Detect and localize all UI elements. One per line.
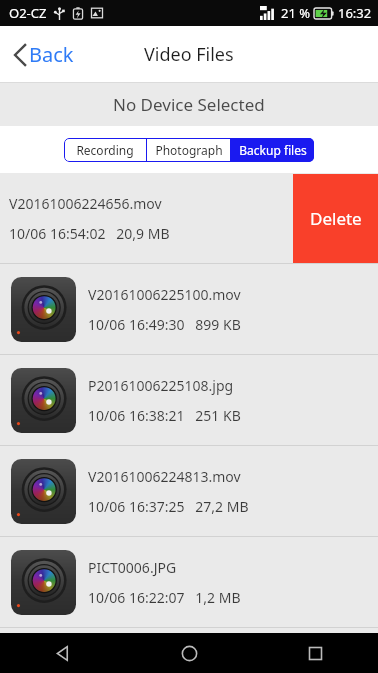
button[interactable]: Backup files: [231, 138, 314, 162]
staticText: Back: [29, 41, 74, 68]
staticText: O2-CZ: [9, 4, 47, 22]
staticText: 21 %: [281, 4, 311, 22]
button[interactable]: Home: [126, 633, 252, 673]
button[interactable]: Back: [0, 633, 126, 673]
staticText: 10/06 16:49:30 899 KB: [88, 315, 241, 334]
button[interactable]: P20161006225108.jpg: [0, 355, 378, 446]
button[interactable]: Photograph: [147, 138, 230, 162]
button[interactable]: Recent apps: [252, 633, 378, 673]
staticText: Recording: [76, 142, 134, 158]
staticText: 10/06 16:37:25 27,2 MB: [88, 497, 249, 516]
staticText: V20161006224656.mov: [9, 194, 162, 213]
button[interactable]: Delete: [293, 174, 378, 263]
staticText: V20161006225100.mov: [88, 285, 241, 304]
staticText: V20161006224813.mov: [88, 467, 241, 486]
staticText: PICT0006.JPG: [88, 558, 177, 577]
staticText: 10/06 16:38:21 251 KB: [88, 406, 241, 425]
staticText: Delete: [310, 207, 362, 230]
button[interactable]: PICT0006.JPG: [0, 537, 378, 628]
staticText: P20161006225108.jpg: [88, 376, 234, 395]
button[interactable]: V20161006225100.mov: [0, 264, 378, 355]
staticText: Photograph: [155, 142, 223, 158]
button[interactable]: V20161006224813.mov: [0, 446, 378, 537]
staticText: Backup files: [239, 142, 307, 158]
staticText: No Device Selected: [113, 93, 265, 116]
staticText: Video Files: [144, 42, 234, 67]
button[interactable]: Back: [0, 33, 90, 76]
staticText: 10/06 16:54:02 20,9 MB: [9, 224, 170, 243]
staticText: 16:32: [338, 4, 372, 22]
button[interactable]: Recording: [64, 138, 146, 162]
staticText: 10/06 16:22:07 1,2 MB: [88, 588, 241, 607]
